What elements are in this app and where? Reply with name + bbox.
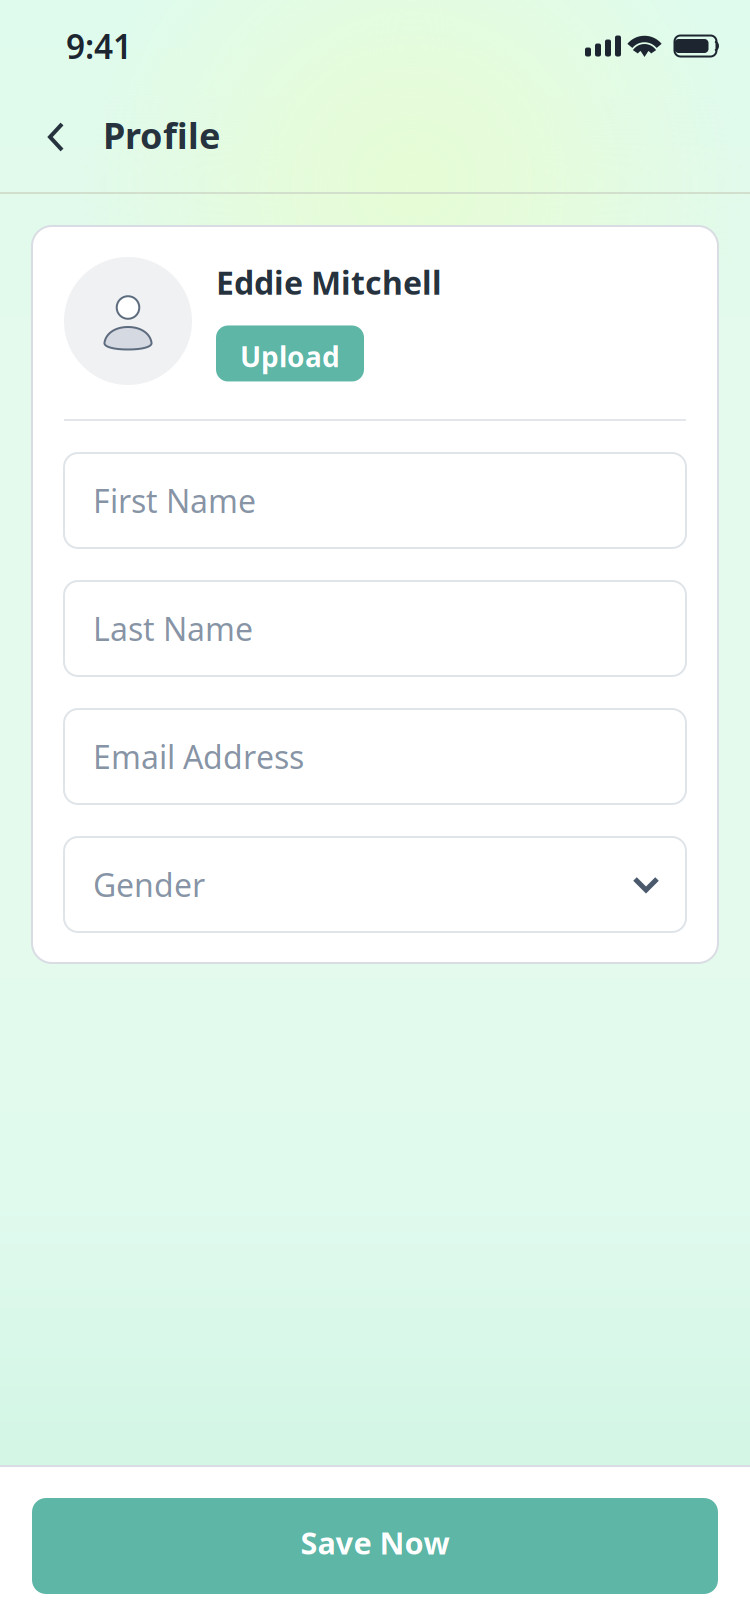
staticText: Gender (93, 863, 205, 906)
staticText: Email Address (93, 735, 304, 778)
staticText: Eddie Mitchell (216, 261, 442, 303)
staticText: Save Now (300, 1522, 449, 1563)
staticText: Last Name (93, 607, 253, 650)
button[interactable]: Upload (216, 325, 364, 381)
button[interactable]: First Name (64, 453, 686, 548)
button[interactable]: Save Now (32, 1498, 718, 1594)
button[interactable]: Last Name (64, 581, 686, 676)
staticText: First Name (93, 479, 256, 522)
staticText: Upload (240, 338, 340, 375)
button[interactable]: Back (22, 110, 90, 174)
button[interactable]: Email Address (64, 709, 686, 804)
button[interactable]: Gender (64, 837, 686, 932)
staticText: 9:41 (66, 24, 132, 68)
staticText: Profile (103, 111, 220, 159)
